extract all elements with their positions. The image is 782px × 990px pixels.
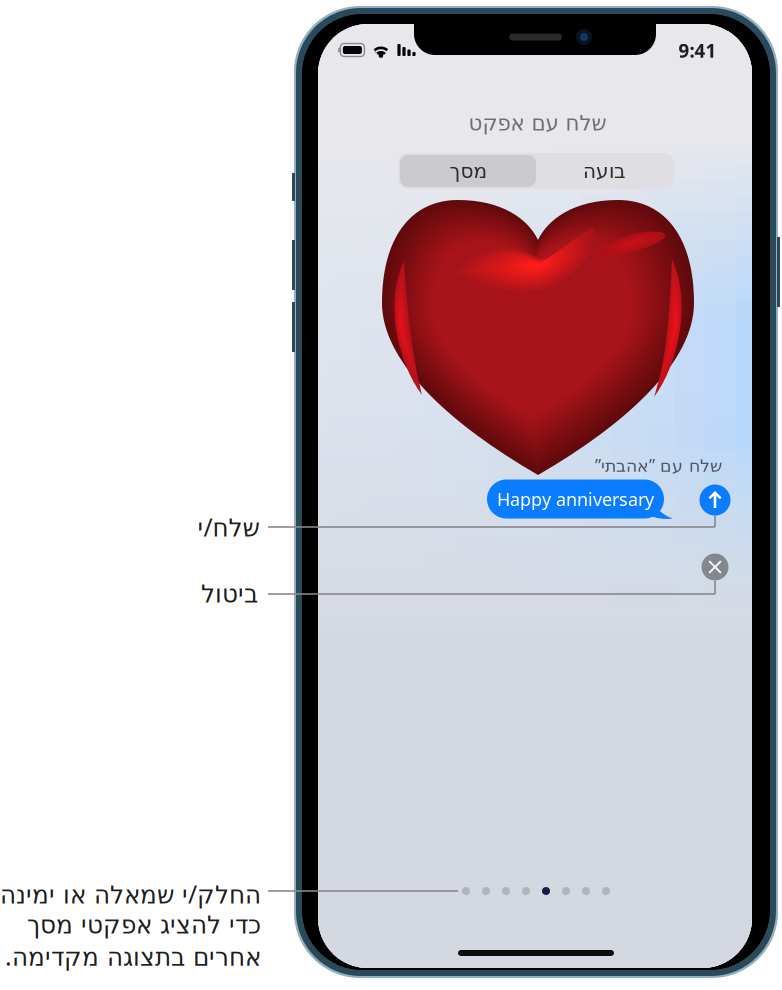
staticText: שלח/י	[197, 510, 259, 544]
staticText: שלח עם ”אהבתי”	[594, 453, 721, 477]
button[interactable]: Cancel	[701, 553, 728, 580]
staticText: Happy anniversary	[497, 487, 654, 511]
button[interactable]: Send	[699, 484, 730, 515]
staticText: 9:41	[678, 38, 716, 63]
staticText: שלח עם אפקט	[468, 111, 606, 135]
staticText: מסך	[449, 159, 487, 183]
staticText: ביטול	[200, 580, 257, 608]
staticText: החלק/י שמאלה או ימינה כדי להציג אפקטי מס…	[0, 877, 260, 973]
button[interactable]: בועה	[536, 155, 672, 187]
button[interactable]: מסך	[400, 155, 536, 187]
staticText: בועה	[582, 159, 625, 183]
